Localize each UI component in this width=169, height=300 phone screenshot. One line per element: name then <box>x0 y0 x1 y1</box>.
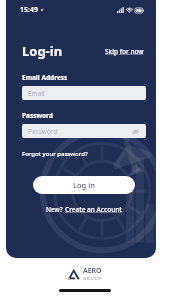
button[interactable]: Forgot your password? <box>22 149 88 159</box>
staticText: Password <box>22 111 53 120</box>
staticText: Log-in <box>22 42 63 60</box>
staticText: Email Address <box>22 73 68 82</box>
staticText: AERO <box>83 266 102 276</box>
button[interactable]: Password <box>22 124 146 138</box>
staticText: Skip for now <box>105 47 144 56</box>
staticText: New? <box>46 205 65 214</box>
staticText: Password <box>28 127 58 136</box>
staticText: G R O U P <box>83 276 102 281</box>
button[interactable]: Skip for now <box>103 45 146 58</box>
staticText: Create an Account <box>65 205 122 214</box>
staticText: Log in <box>73 180 95 190</box>
button[interactable]: Show password <box>131 127 140 136</box>
staticText: 15:49 <box>20 5 38 15</box>
button[interactable]: Email <box>22 86 146 100</box>
staticText: Forgot your password? <box>22 150 88 158</box>
button[interactable]: Create an Account <box>65 205 122 214</box>
staticText: Email <box>28 89 45 98</box>
button[interactable]: Log in <box>33 176 135 194</box>
